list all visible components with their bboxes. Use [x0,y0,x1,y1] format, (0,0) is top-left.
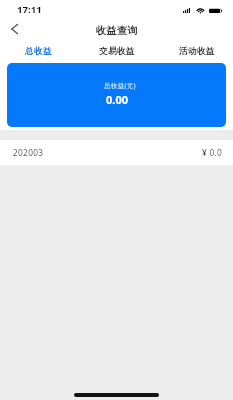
staticText: 活动收益 [179,46,215,57]
staticText: ¥ 0.0 [202,147,223,158]
button[interactable]: 活动收益 [169,40,225,60]
staticText: 总收益(元) [104,81,136,90]
button[interactable]: 202003 [0,140,233,165]
staticText: 交易收益 [99,46,135,57]
staticText: 总收益 [25,46,52,57]
staticText: 收益查询 [96,24,138,37]
staticText: 17:11 [17,3,42,16]
staticText: 0.00 [106,92,128,107]
button[interactable]: 交易收益 [89,40,145,60]
button[interactable]: 总收益(元) [7,63,226,127]
button[interactable]: 总收益 [10,40,66,60]
button[interactable]: Back [0,18,26,40]
staticText: 202003 [13,147,44,158]
